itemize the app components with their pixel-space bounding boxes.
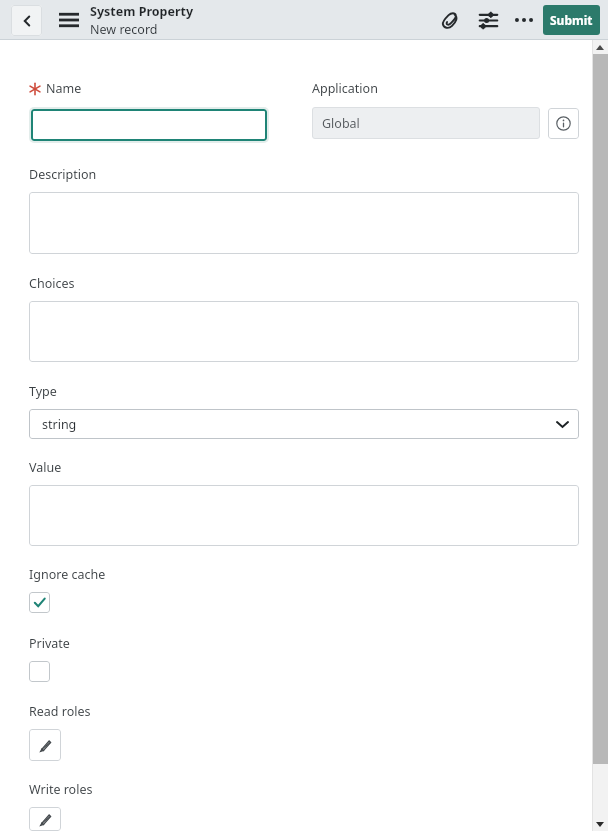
button[interactable]: Global	[312, 107, 540, 139]
staticText: Submit	[550, 12, 593, 28]
staticText: Private	[29, 635, 70, 652]
button[interactable]	[29, 192, 579, 254]
button[interactable]: Scroll up	[592, 40, 608, 54]
staticText: string	[42, 416, 77, 433]
button[interactable]: Personalize	[471, 3, 505, 37]
button[interactable]: Application info	[548, 108, 579, 139]
staticText: Application	[312, 80, 378, 97]
button[interactable]: Menu	[54, 5, 84, 35]
button[interactable]: Ignore cache	[29, 592, 50, 613]
button[interactable]: Edit read roles	[29, 729, 61, 761]
staticText: System Property	[90, 3, 194, 20]
button[interactable]	[31, 109, 267, 141]
button[interactable]: string	[29, 409, 579, 439]
staticText: Description	[29, 166, 97, 183]
staticText: Write roles	[29, 781, 93, 798]
button[interactable]: Submit	[543, 5, 600, 35]
staticText: Type	[29, 383, 57, 400]
button[interactable]: Attachments	[433, 3, 467, 37]
staticText: Value	[29, 459, 62, 476]
button[interactable]: Back	[11, 5, 42, 36]
button[interactable]	[29, 301, 579, 362]
staticText: Choices	[29, 275, 75, 292]
button[interactable]: Scroll down	[592, 817, 608, 831]
staticText: Global	[322, 115, 360, 132]
button[interactable]: Private	[29, 661, 50, 682]
button[interactable]	[29, 485, 579, 546]
staticText: New record	[90, 21, 158, 38]
button[interactable]: More options	[509, 5, 539, 35]
staticText: Read roles	[29, 703, 91, 720]
button[interactable]: Edit write roles	[29, 807, 61, 831]
staticText: Ignore cache	[29, 566, 106, 583]
staticText: Name	[46, 80, 82, 97]
